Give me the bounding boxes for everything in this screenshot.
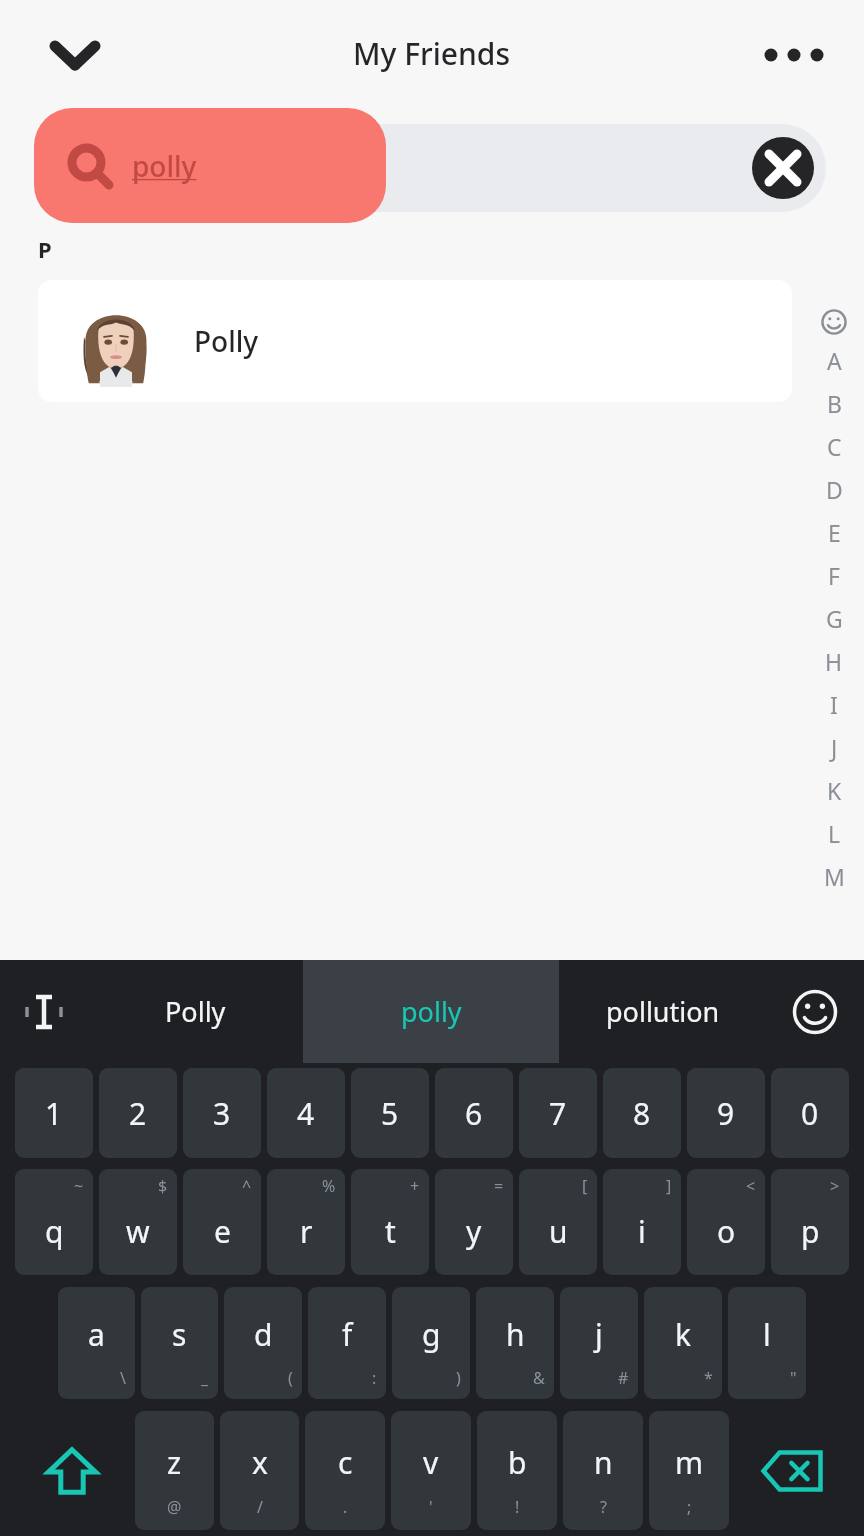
- staticText: &: [533, 1367, 545, 1389]
- staticText: D: [826, 474, 843, 505]
- staticText: q: [45, 1211, 64, 1252]
- button[interactable]: f: [308, 1287, 386, 1399]
- staticText: d: [254, 1314, 273, 1355]
- button[interactable]: Clear search: [752, 137, 814, 199]
- staticText: s: [172, 1314, 187, 1355]
- button[interactable]: j: [560, 1287, 638, 1399]
- button[interactable]: 9: [687, 1068, 765, 1158]
- staticText: h: [506, 1314, 525, 1355]
- button[interactable]: >: [771, 1169, 849, 1275]
- button[interactable]: D: [804, 468, 864, 511]
- button[interactable]: =: [435, 1169, 513, 1275]
- button[interactable]: 4: [267, 1068, 345, 1158]
- button[interactable]: k: [644, 1287, 722, 1399]
- button[interactable]: Bitmoji: [817, 305, 851, 339]
- button[interactable]: c: [305, 1411, 385, 1530]
- button[interactable]: G: [804, 597, 864, 640]
- button[interactable]: Backspace: [732, 1411, 852, 1530]
- button[interactable]: v: [391, 1411, 471, 1530]
- staticText: w: [126, 1211, 150, 1252]
- button[interactable]: K: [804, 769, 864, 812]
- staticText: A: [827, 345, 842, 376]
- staticText: Polly: [165, 993, 226, 1030]
- button[interactable]: g: [392, 1287, 470, 1399]
- staticText: ": [790, 1367, 797, 1389]
- staticText: r: [300, 1211, 313, 1252]
- staticText: pollution: [606, 993, 720, 1030]
- button[interactable]: n: [563, 1411, 643, 1530]
- staticText: @: [167, 1496, 182, 1518]
- button[interactable]: More options: [758, 27, 830, 83]
- staticText: !: [515, 1496, 520, 1518]
- staticText: 1: [45, 1093, 63, 1134]
- button[interactable]: Polly: [88, 960, 303, 1063]
- button[interactable]: ^: [183, 1169, 261, 1275]
- button[interactable]: Text cursor: [0, 960, 88, 1063]
- button[interactable]: H: [804, 640, 864, 683]
- staticText: +: [410, 1175, 420, 1197]
- staticText: o: [717, 1211, 736, 1252]
- button[interactable]: s: [141, 1287, 218, 1399]
- button[interactable]: Shift: [12, 1411, 132, 1530]
- staticText: 3: [213, 1093, 231, 1134]
- button[interactable]: I: [804, 683, 864, 726]
- button[interactable]: J: [804, 726, 864, 769]
- staticText: <: [746, 1175, 756, 1197]
- button[interactable]: E: [804, 511, 864, 554]
- button[interactable]: m: [649, 1411, 729, 1530]
- button[interactable]: C: [804, 425, 864, 468]
- button[interactable]: [: [519, 1169, 597, 1275]
- button[interactable]: B: [804, 382, 864, 425]
- button[interactable]: ]: [603, 1169, 681, 1275]
- staticText: K: [827, 775, 842, 806]
- staticText: M: [824, 861, 845, 892]
- button[interactable]: 1: [15, 1068, 93, 1158]
- button[interactable]: 0: [771, 1068, 849, 1158]
- button[interactable]: L: [804, 812, 864, 855]
- staticText: ): [456, 1367, 461, 1389]
- button[interactable]: M: [804, 855, 864, 898]
- button[interactable]: z: [135, 1411, 214, 1530]
- button[interactable]: F: [804, 554, 864, 597]
- button[interactable]: b: [477, 1411, 557, 1530]
- button[interactable]: 6: [435, 1068, 513, 1158]
- button[interactable]: Emoji: [766, 960, 864, 1063]
- staticText: %: [322, 1175, 336, 1197]
- button[interactable]: Polly: [38, 280, 792, 402]
- staticText: .: [343, 1496, 348, 1518]
- staticText: x: [252, 1442, 268, 1483]
- button[interactable]: x: [220, 1411, 299, 1530]
- staticText: a: [88, 1314, 105, 1355]
- staticText: e: [214, 1211, 231, 1252]
- button[interactable]: Clear search: [38, 124, 826, 212]
- staticText: $: [158, 1175, 168, 1197]
- staticText: l: [763, 1314, 771, 1355]
- staticText: n: [594, 1442, 613, 1483]
- button[interactable]: a: [58, 1287, 135, 1399]
- staticText: g: [422, 1314, 441, 1355]
- button[interactable]: d: [224, 1287, 302, 1399]
- button[interactable]: pollution: [559, 960, 766, 1063]
- staticText: C: [827, 431, 842, 462]
- button[interactable]: Close: [38, 23, 112, 87]
- button[interactable]: l: [728, 1287, 806, 1399]
- button[interactable]: 7: [519, 1068, 597, 1158]
- staticText: L: [828, 818, 841, 849]
- button[interactable]: +: [351, 1169, 429, 1275]
- button[interactable]: %: [267, 1169, 345, 1275]
- button[interactable]: 2: [99, 1068, 177, 1158]
- button[interactable]: $: [99, 1169, 177, 1275]
- button[interactable]: <: [687, 1169, 765, 1275]
- button[interactable]: 8: [603, 1068, 681, 1158]
- staticText: m: [675, 1442, 704, 1483]
- button[interactable]: A: [804, 339, 864, 382]
- button[interactable]: ~: [15, 1169, 93, 1275]
- button[interactable]: h: [476, 1287, 554, 1399]
- button[interactable]: 3: [183, 1068, 261, 1158]
- staticText: E: [828, 517, 841, 548]
- staticText: ]: [666, 1175, 672, 1197]
- staticText: (: [288, 1367, 293, 1389]
- button[interactable]: 5: [351, 1068, 429, 1158]
- button[interactable]: polly: [303, 960, 559, 1063]
- staticText: [: [582, 1175, 588, 1197]
